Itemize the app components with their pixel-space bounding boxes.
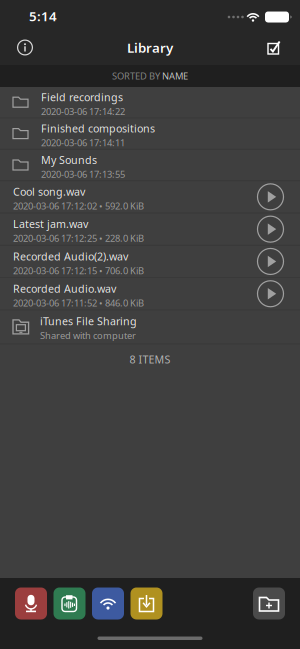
- staticText: 5:14: [29, 7, 57, 25]
- button[interactable]: Record: [15, 587, 47, 619]
- button[interactable]: Play: [257, 183, 284, 210]
- staticText: Recorded Audio(2).wav: [13, 249, 128, 263]
- staticText: 2020-03-06 17:13:55: [41, 168, 125, 180]
- staticText: Field recordings: [41, 90, 123, 104]
- staticText: 2020-03-06 17:14:11: [41, 136, 125, 149]
- button[interactable]: New folder: [253, 587, 285, 619]
- staticText: NAME: [162, 70, 188, 82]
- staticText: Cool song.wav: [13, 185, 85, 199]
- button[interactable]: Paste audio: [53, 587, 85, 619]
- button[interactable]: Select items: [267, 39, 300, 55]
- staticText: 2020-03-06 17:12:02 • 592.0 KiB: [13, 200, 144, 212]
- staticText: 2020-03-06 17:12:25 • 228.0 KiB: [13, 232, 144, 244]
- staticText: iTunes File Sharing: [40, 314, 137, 328]
- staticText: Shared with computer: [40, 329, 136, 342]
- button[interactable]: Info: [0, 39, 33, 55]
- button[interactable]: Play: [257, 216, 284, 243]
- button[interactable]: Finished compositions: [0, 118, 300, 150]
- staticText: 2020-03-06 17:14:22: [41, 105, 125, 117]
- staticText: Latest jam.wav: [13, 217, 88, 231]
- button[interactable]: Play: [257, 280, 284, 307]
- staticText: My Sounds: [41, 153, 97, 167]
- button[interactable]: Latest jam.wav: [0, 213, 300, 246]
- staticText: SORTED BY: [112, 70, 162, 82]
- button[interactable]: Play: [257, 248, 284, 275]
- button[interactable]: Wi-Fi transfer: [92, 587, 124, 619]
- staticText: Recorded Audio.wav: [13, 281, 116, 296]
- staticText: Library: [127, 39, 173, 56]
- button[interactable]: Cool song.wav: [0, 181, 300, 213]
- button[interactable]: Import: [130, 587, 162, 619]
- staticText: 8 ITEMS: [129, 352, 170, 367]
- staticText: 2020-03-06 17:11:52 • 846.0 KiB: [13, 297, 144, 309]
- staticText: Finished compositions: [41, 121, 155, 135]
- button[interactable]: Recorded Audio(2).wav: [0, 246, 300, 278]
- button[interactable]: Field recordings: [0, 87, 300, 118]
- button[interactable]: iTunes File Sharing: [0, 310, 300, 344]
- button[interactable]: Recorded Audio.wav: [0, 278, 300, 310]
- button[interactable]: My Sounds: [0, 150, 300, 181]
- staticText: 2020-03-06 17:12:15 • 706.0 KiB: [13, 264, 144, 277]
